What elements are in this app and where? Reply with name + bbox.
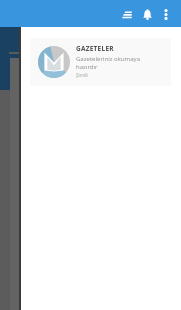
staticText: Şimdi: [76, 72, 88, 78]
button[interactable]: GAZETELER: [30, 38, 171, 86]
button[interactable]: Sort: [117, 4, 137, 24]
staticText: GAZETELER: [76, 44, 114, 53]
button[interactable]: More options: [157, 5, 175, 23]
staticText: Gazeteleriniz okumaya hazırdır: [76, 55, 141, 71]
button[interactable]: Notifications: [137, 4, 157, 24]
